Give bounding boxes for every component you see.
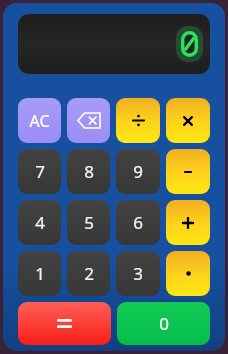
button[interactable]: 3 [116,251,160,296]
button[interactable]: Multiply [166,98,210,143]
staticText: AC [29,110,50,132]
button[interactable]: Divide [116,98,160,143]
button[interactable]: Plus [166,200,210,245]
staticText: 0 [159,312,169,335]
button[interactable]: AC [18,98,61,143]
staticText: 6 [133,211,143,234]
staticText: 2 [84,262,94,285]
button[interactable]: 1 [18,251,61,296]
button[interactable]: Backspace [67,98,110,143]
button[interactable]: 4 [18,200,61,245]
staticText: 9 [133,160,143,183]
staticText: 5 [84,211,94,234]
staticText: 1 [35,262,45,285]
button[interactable]: 2 [67,251,110,296]
button[interactable]: Decimal point [166,251,210,296]
button[interactable]: 5 [67,200,110,245]
staticText: 7 [35,160,45,183]
button[interactable]: 9 [116,149,160,194]
button[interactable]: 6 [116,200,160,245]
staticText: 3 [133,262,143,285]
button[interactable]: 8 [67,149,110,194]
staticText: 4 [35,211,45,234]
button[interactable]: 0 [117,302,210,345]
button[interactable]: Minus [166,149,210,194]
button[interactable]: Equals [18,302,111,345]
staticText: 8 [84,160,94,183]
button[interactable]: 7 [18,149,61,194]
